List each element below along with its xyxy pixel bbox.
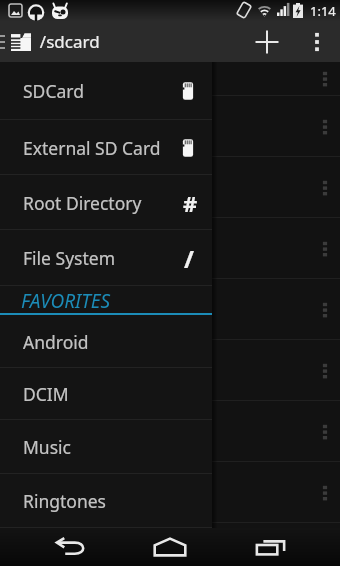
button[interactable]: More options <box>314 68 336 90</box>
button[interactable]: More options <box>298 23 336 61</box>
button[interactable]: Add <box>248 23 286 61</box>
button[interactable]: More options <box>314 360 336 382</box>
button[interactable]: Music <box>0 420 212 474</box>
staticText: /sdcard <box>31 30 100 53</box>
staticText: External SD Card <box>23 136 161 160</box>
button[interactable]: Ringtones <box>0 474 212 528</box>
button[interactable]: More options <box>314 238 336 260</box>
staticText: / <box>184 242 194 275</box>
button[interactable]: SDCard <box>0 62 212 120</box>
staticText: 1:14 <box>310 2 336 20</box>
button[interactable]: Home <box>142 528 198 566</box>
staticText: DCIM <box>23 382 69 406</box>
staticText: Ringtones <box>23 489 106 513</box>
button[interactable]: More options <box>314 482 336 504</box>
button[interactable]: External SD Card <box>0 120 212 175</box>
staticText: Android <box>23 330 89 354</box>
button[interactable]: More options <box>314 299 336 321</box>
button[interactable]: Recent apps <box>242 528 298 566</box>
staticText: Root Directory <box>23 191 142 215</box>
button[interactable]: Root Directory <box>0 175 212 230</box>
staticText: FAVORITES <box>21 288 111 314</box>
button[interactable]: Android <box>0 315 212 368</box>
staticText: Music <box>23 435 71 459</box>
button[interactable]: DCIM <box>0 368 212 420</box>
button[interactable]: Open navigation drawer <box>0 27 10 57</box>
button[interactable]: More options <box>314 177 336 199</box>
staticText: # <box>183 188 198 218</box>
button[interactable]: File System <box>0 230 212 286</box>
button[interactable]: More options <box>314 116 336 138</box>
staticText: SDCard <box>23 79 84 103</box>
staticText: File System <box>23 246 115 270</box>
button[interactable]: More options <box>314 421 336 443</box>
button[interactable]: Back <box>42 528 98 566</box>
